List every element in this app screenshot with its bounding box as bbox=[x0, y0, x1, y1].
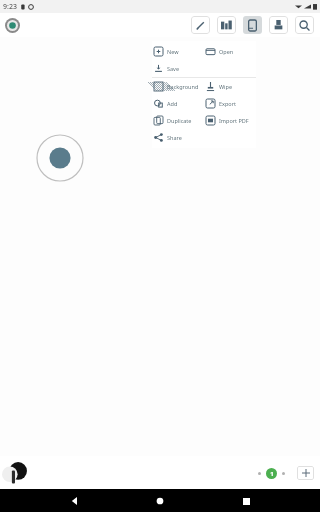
button[interactable]: Save bbox=[152, 64, 204, 73]
staticText: Background bbox=[167, 83, 199, 90]
button[interactable]: Layers bbox=[217, 16, 236, 34]
button[interactable]: Next page bbox=[282, 472, 285, 475]
button[interactable]: Add page bbox=[297, 466, 314, 480]
button[interactable]: Page bbox=[243, 16, 262, 34]
button[interactable]: Recent apps bbox=[235, 490, 257, 512]
button[interactable]: Import PDF bbox=[204, 116, 256, 125]
staticText: Duplicate bbox=[167, 117, 192, 124]
button[interactable]: Home bbox=[149, 490, 171, 512]
staticText: Add bbox=[167, 100, 178, 107]
button[interactable]: Share bbox=[152, 133, 204, 142]
button[interactable]: Background bbox=[152, 82, 204, 91]
button[interactable]: Current tool bbox=[2, 460, 28, 486]
staticText: Open bbox=[219, 48, 234, 55]
button[interactable]: Duplicate bbox=[152, 116, 204, 125]
button[interactable]: Add bbox=[152, 99, 204, 108]
staticText: 1 bbox=[270, 470, 274, 478]
button[interactable]: New bbox=[152, 47, 204, 56]
button[interactable]: Search bbox=[295, 16, 314, 34]
button[interactable]: Back bbox=[64, 490, 86, 512]
button[interactable]: Wipe bbox=[204, 82, 256, 91]
button[interactable]: Eraser bbox=[269, 16, 288, 34]
button[interactable]: Open bbox=[204, 47, 256, 56]
staticText: Wipe bbox=[219, 83, 233, 90]
button[interactable]: Page 1 bbox=[266, 468, 277, 479]
staticText: Import PDF bbox=[219, 117, 249, 124]
button[interactable]: Profile bbox=[5, 18, 20, 33]
staticText: New bbox=[167, 48, 179, 55]
staticText: Save bbox=[167, 65, 180, 72]
button[interactable]: Pen bbox=[191, 16, 210, 34]
staticText: Export bbox=[219, 100, 236, 107]
button[interactable]: Previous page bbox=[258, 472, 261, 475]
staticText: Share bbox=[167, 134, 182, 141]
staticText: 9:23 bbox=[3, 2, 17, 12]
button[interactable]: Export bbox=[204, 99, 256, 108]
